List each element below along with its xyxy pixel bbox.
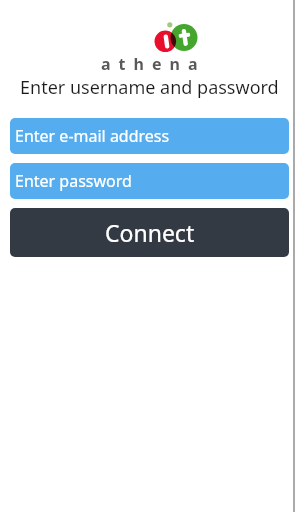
- staticText: Connect: [105, 217, 195, 248]
- staticText: Enter e-mail address: [15, 125, 170, 147]
- button[interactable]: Enter password: [10, 163, 289, 199]
- staticText: Enter username and password: [20, 75, 279, 100]
- button[interactable]: Enter e-mail address: [10, 118, 289, 154]
- button[interactable]: Connect: [10, 208, 289, 257]
- staticText: athena: [101, 53, 206, 75]
- staticText: Enter password: [15, 170, 132, 192]
